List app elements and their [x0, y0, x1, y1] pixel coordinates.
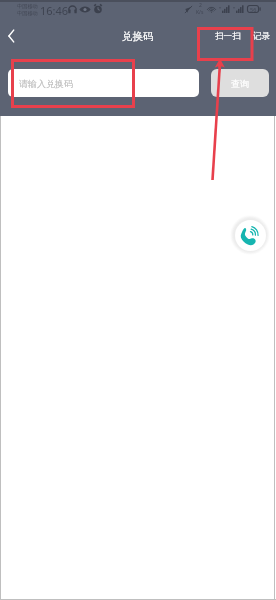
- staticText: K/s: [196, 9, 204, 16]
- staticText: 56: [250, 6, 257, 13]
- button[interactable]: Call customer service: [235, 220, 266, 251]
- staticText: “: [233, 5, 236, 13]
- staticText: 记录: [253, 31, 271, 42]
- button[interactable]: 扫一扫: [211, 25, 247, 48]
- button[interactable]: Back: [0, 23, 25, 49]
- staticText: 2: [199, 2, 202, 9]
- staticText: “: [219, 5, 222, 13]
- staticText: 兑换码: [122, 30, 154, 43]
- button[interactable]: 记录: [247, 25, 276, 48]
- staticText: 扫一扫: [215, 31, 241, 42]
- button[interactable]: 查询: [211, 69, 269, 97]
- staticText: 16:46: [40, 3, 69, 18]
- staticText: 中国移动: [17, 3, 38, 10]
- staticText: 查询: [231, 78, 249, 89]
- staticText: 中国移动: [17, 10, 38, 17]
- staticText: 请输入兑换码: [19, 78, 73, 89]
- button[interactable]: 请输入兑换码: [8, 69, 199, 97]
